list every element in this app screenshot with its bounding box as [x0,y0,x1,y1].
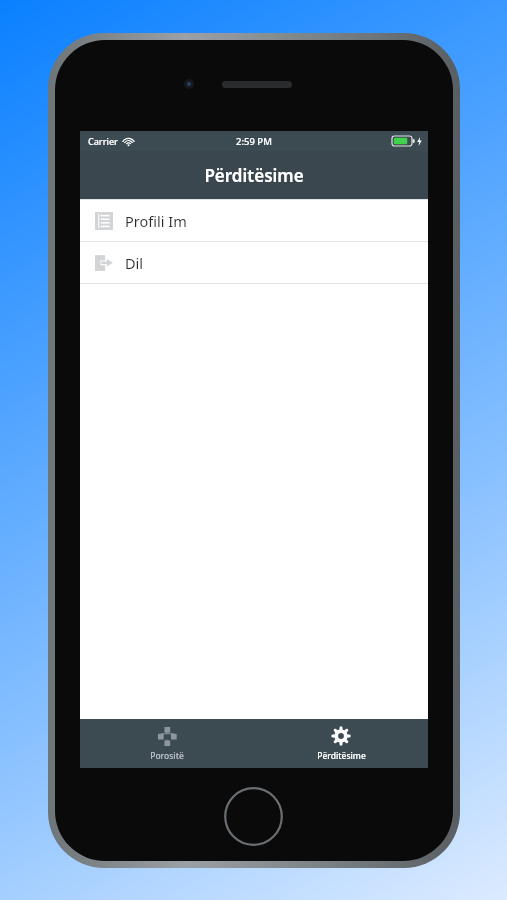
staticText: Përditësime [317,750,366,762]
button[interactable]: Dil [80,242,428,283]
button[interactable]: Porositë [80,719,254,768]
staticText: 2:59 PM [236,135,272,148]
button[interactable]: Profili Im [80,200,428,241]
staticText: Porositë [150,750,184,762]
staticText: Dil [125,253,144,273]
staticText: Carrier [88,135,118,147]
staticText: Përditësime [204,164,304,187]
staticText: Profili Im [125,211,187,231]
button[interactable]: Përditësime [254,719,428,768]
